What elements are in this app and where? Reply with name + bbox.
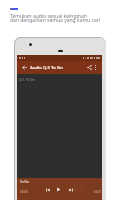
button[interactable]: Share — [85, 63, 94, 72]
staticText: dan dengarkan semua yang kamu cari — [10, 17, 101, 24]
staticText: Temukan audio sesuai keinginan — [10, 13, 87, 20]
button[interactable]: Previous — [44, 186, 51, 193]
staticText: Audio Q.S Ya Sin — [30, 64, 64, 70]
button[interactable]: Next — [67, 186, 74, 193]
staticText: 04:21 — [94, 190, 102, 194]
staticText: Q.S. Ya Sin — [19, 77, 35, 81]
button[interactable]: Play — [54, 185, 63, 194]
button[interactable]: Repeat — [72, 186, 79, 193]
staticText: Ya Sin — [20, 180, 29, 184]
button[interactable]: More options — [92, 63, 98, 72]
button[interactable]: Shuffle — [79, 186, 86, 193]
button[interactable]: Navigate up — [19, 61, 29, 73]
staticText: 00:00 — [20, 190, 28, 194]
